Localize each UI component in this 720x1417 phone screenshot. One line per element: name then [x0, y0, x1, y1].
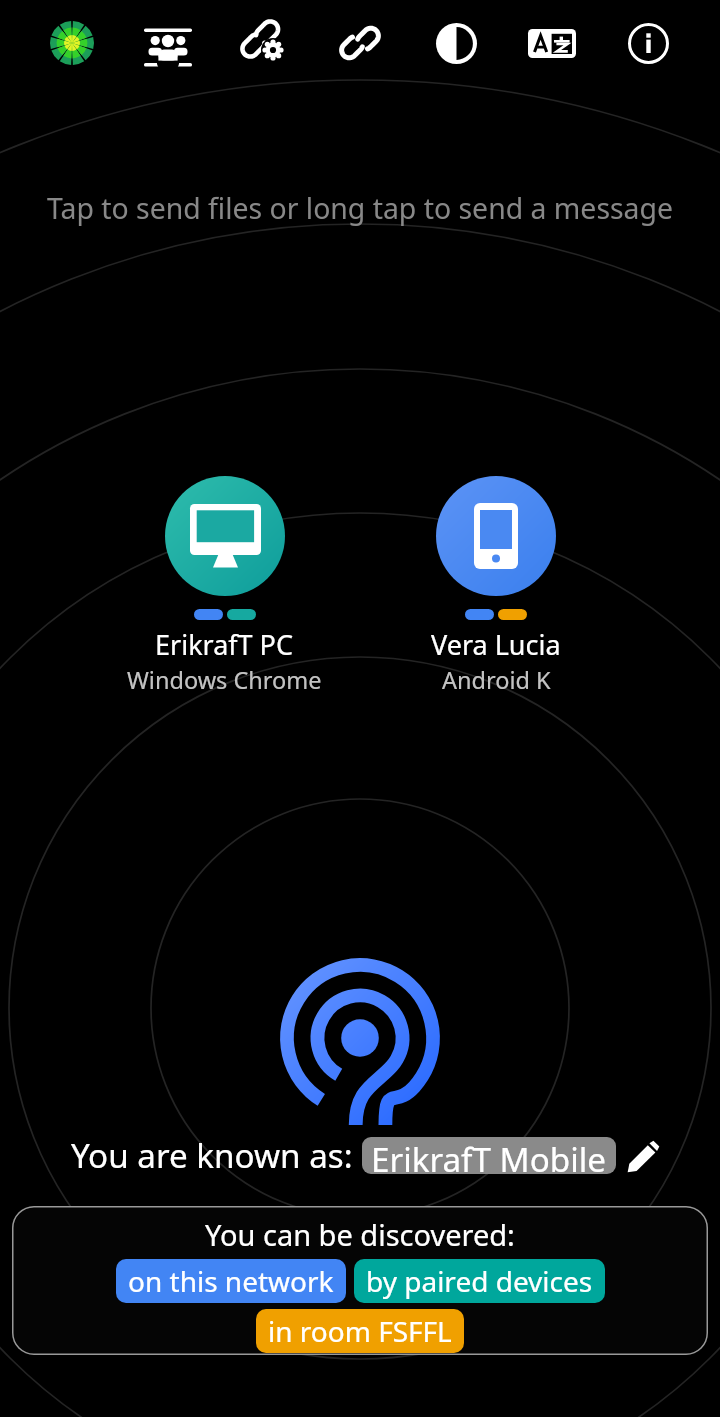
staticText: by paired devices — [366, 1262, 593, 1300]
staticText: You are known as: — [71, 1133, 362, 1178]
button[interactable]: Edit alias — [624, 1137, 662, 1175]
button[interactable]: Theme — [408, 0, 504, 86]
staticText: Tap to send files or long tap to send a … — [0, 189, 720, 228]
staticText: on this network — [128, 1262, 334, 1300]
button[interactable]: Link — [312, 0, 408, 86]
button[interactable]: by paired devices — [354, 1259, 605, 1303]
button[interactable]: Vera Lucia — [431, 476, 561, 696]
button[interactable]: Contacts — [120, 0, 216, 86]
staticText: Vera Lucia — [431, 626, 561, 663]
staticText: Windows Chrome — [127, 664, 322, 696]
button[interactable]: ErikrafT Mobile — [362, 1137, 616, 1174]
staticText: ErikrafT PC — [155, 626, 294, 663]
button[interactable]: in room FSFFL — [256, 1309, 464, 1353]
button[interactable]: Info — [600, 0, 696, 86]
staticText: Android K — [442, 664, 551, 696]
staticText: in room FSFFL — [268, 1312, 452, 1350]
staticText: You can be discovered: — [205, 1215, 515, 1254]
staticText: ErikrafT Mobile — [371, 1137, 607, 1174]
button[interactable]: You can be discovered: — [12, 1206, 708, 1355]
button[interactable]: Device settings — [216, 0, 312, 86]
button[interactable]: Language — [504, 0, 600, 86]
button[interactable]: on this network — [116, 1259, 346, 1303]
button[interactable]: ErikrafT PC — [127, 476, 322, 696]
button[interactable]: Radar — [24, 0, 120, 86]
